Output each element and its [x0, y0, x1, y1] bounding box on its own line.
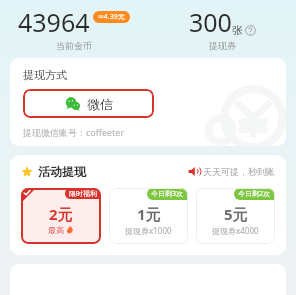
staticText: 1元 [137, 204, 161, 224]
staticText: 提现券x4000 [212, 225, 259, 236]
staticText: 微信 [87, 96, 113, 112]
staticText: 提现方式 [23, 68, 67, 82]
button[interactable]: 今日剩2次 [196, 188, 275, 244]
staticText: 天天可提，秒到账 [203, 166, 275, 177]
staticText: 43964 [18, 5, 90, 39]
button[interactable]: ≈4.39元 [93, 11, 130, 23]
staticText: 提现微信账号：coffeeter [23, 126, 125, 138]
staticText: 300 [189, 5, 232, 39]
button[interactable]: Help [245, 25, 256, 36]
staticText: 提现券x1000 [125, 225, 172, 236]
staticText: 提现券 [209, 40, 236, 51]
staticText: 最高 [48, 225, 64, 235]
staticText: 活动提现 [38, 164, 86, 179]
staticText: 今日剩3次 [151, 189, 184, 199]
staticText: 张 [232, 23, 243, 37]
staticText: 5元 [224, 204, 248, 224]
button[interactable]: 今日剩3次 [109, 188, 188, 244]
staticText: ≈4.39元 [98, 12, 125, 22]
staticText: 今日剩2次 [238, 189, 271, 199]
staticText: 限时福利 [69, 189, 97, 198]
button[interactable]: 限时福利 [21, 188, 101, 244]
button[interactable]: 微信 [23, 89, 154, 118]
staticText: 2元 [49, 204, 73, 224]
staticText: 当前金币 [56, 40, 92, 51]
